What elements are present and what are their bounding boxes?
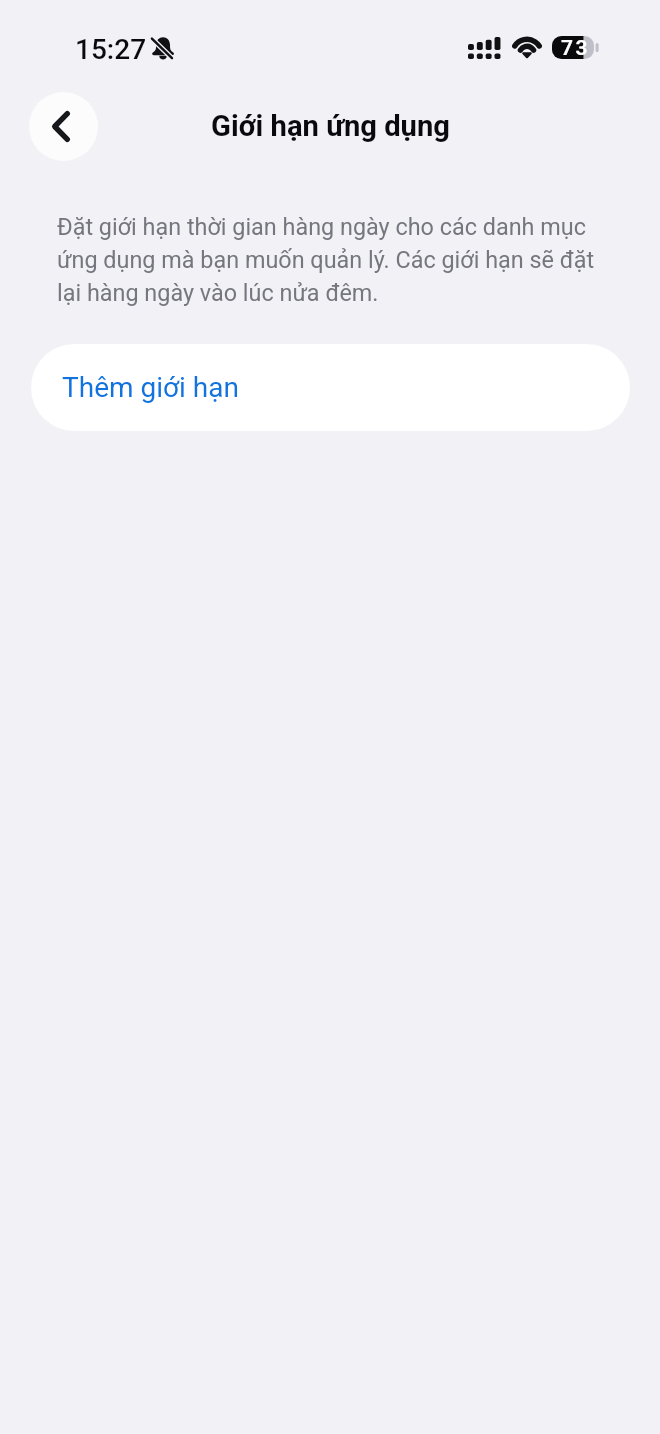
staticText: Đặt giới hạn thời gian hàng ngày cho các…	[57, 213, 597, 307]
staticText: Giới hạn ứng dụng	[211, 109, 450, 143]
staticText: 15:27	[75, 33, 147, 66]
button[interactable]: Thêm giới hạn	[31, 344, 630, 431]
staticText: 73	[561, 36, 591, 59]
staticText: Thêm giới hạn	[62, 371, 239, 404]
button[interactable]: Back	[29, 92, 98, 161]
